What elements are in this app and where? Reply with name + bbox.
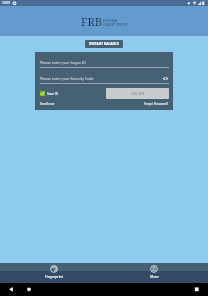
- other: Show security code: [162, 76, 169, 81]
- staticText: 13:07: [2, 1, 11, 5]
- staticText: CREDIT UNION: [103, 23, 128, 27]
- button[interactable]: INSTANT BALANCE: [85, 40, 123, 48]
- staticText: Save ID: [47, 92, 59, 96]
- button[interactable]: Save ID: [40, 91, 59, 96]
- staticText: Please enter your Logon ID: [40, 60, 86, 65]
- staticText: FEDERAL: [103, 19, 119, 23]
- button[interactable]: Forgot Password?: [144, 102, 169, 106]
- staticText: FRB: [81, 14, 102, 29]
- staticText: Please enter your Security Code: [40, 76, 94, 81]
- button[interactable]: More: [104, 263, 204, 283]
- button[interactable]: Enroll now: [40, 102, 55, 106]
- button[interactable]: Fingerprint: [4, 263, 104, 283]
- staticText: INSTANT BALANCE: [89, 42, 120, 46]
- staticText: More: [150, 274, 159, 279]
- button[interactable]: LOG ON: [106, 88, 169, 99]
- staticText: LOG ON: [131, 92, 144, 96]
- staticText: Fingerprint: [45, 274, 63, 279]
